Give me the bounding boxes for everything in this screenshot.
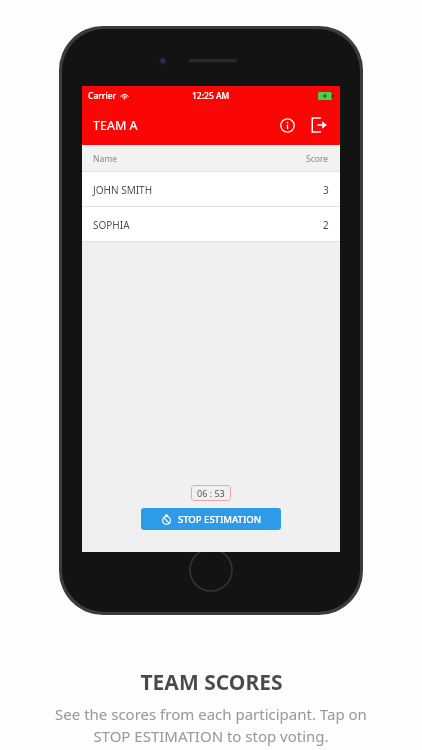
staticText: TEAM A bbox=[93, 117, 138, 134]
staticText: Name bbox=[93, 153, 117, 165]
staticText: STOP ESTIMATION to stop voting. bbox=[93, 726, 329, 746]
button[interactable]: Info bbox=[274, 112, 300, 138]
staticText: TEAM SCORES bbox=[140, 668, 283, 697]
staticText: 3 bbox=[323, 183, 329, 197]
staticText: Score bbox=[306, 153, 329, 165]
staticText: STOP ESTIMATION bbox=[178, 513, 262, 526]
button[interactable]: JOHN SMITH bbox=[82, 172, 340, 207]
button[interactable]: SOPHIA bbox=[82, 207, 340, 242]
staticText: JOHN SMITH bbox=[93, 183, 153, 197]
staticText: SOPHIA bbox=[93, 218, 130, 232]
staticText: Carrier bbox=[88, 90, 117, 102]
staticText: See the scores from each participant. Ta… bbox=[55, 704, 367, 724]
staticText: 2 bbox=[323, 218, 329, 232]
staticText: 06 : 53 bbox=[197, 487, 225, 499]
staticText: 12:25 AM bbox=[192, 90, 230, 102]
button[interactable]: Log out bbox=[306, 112, 332, 138]
button[interactable]: STOP ESTIMATION bbox=[141, 508, 281, 530]
